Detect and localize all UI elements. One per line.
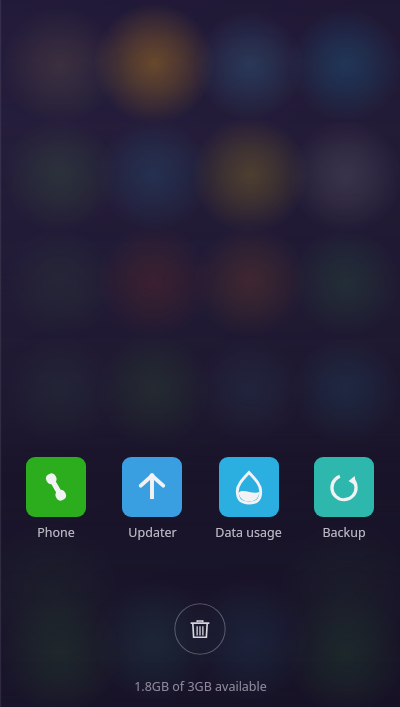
staticText: Updater [128,524,177,541]
button[interactable]: Updater [122,455,182,543]
staticText: Backup [322,524,366,541]
button[interactable]: Data usage [215,455,282,543]
button[interactable]: Backup [314,455,374,543]
button[interactable]: Clear all [174,603,226,655]
staticText: 1.8GB of 3GB available [134,678,267,695]
staticText: Data usage [215,524,282,541]
button[interactable]: Phone [26,455,86,543]
staticText: Phone [37,524,75,541]
